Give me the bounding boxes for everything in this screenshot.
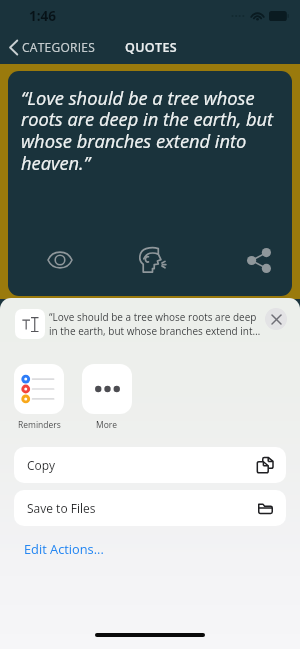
staticText: Copy [27, 457, 56, 473]
button[interactable]: Reminders [14, 364, 64, 431]
button[interactable]: Copy [14, 447, 286, 483]
staticText: “Love should be a tree whose roots are d… [21, 85, 284, 175]
staticText: “Love should be a tree whose roots are d… [49, 310, 262, 338]
button[interactable]: Save to Files [14, 490, 286, 526]
staticText: 1:46 [29, 7, 57, 25]
button[interactable]: Close [265, 308, 287, 330]
button[interactable]: Share [226, 227, 292, 293]
button[interactable]: Edit Actions... [24, 540, 104, 557]
staticText: Save to Files [27, 500, 96, 516]
staticText: Reminders [18, 419, 61, 431]
staticText: CATEGORIES [22, 39, 95, 55]
button[interactable]: Speak [119, 227, 185, 293]
button[interactable]: CATEGORIES [0, 30, 105, 64]
button[interactable]: View [27, 227, 93, 293]
button[interactable]: More [82, 364, 132, 431]
staticText: More [96, 419, 118, 431]
staticText: QUOTES [125, 39, 177, 56]
